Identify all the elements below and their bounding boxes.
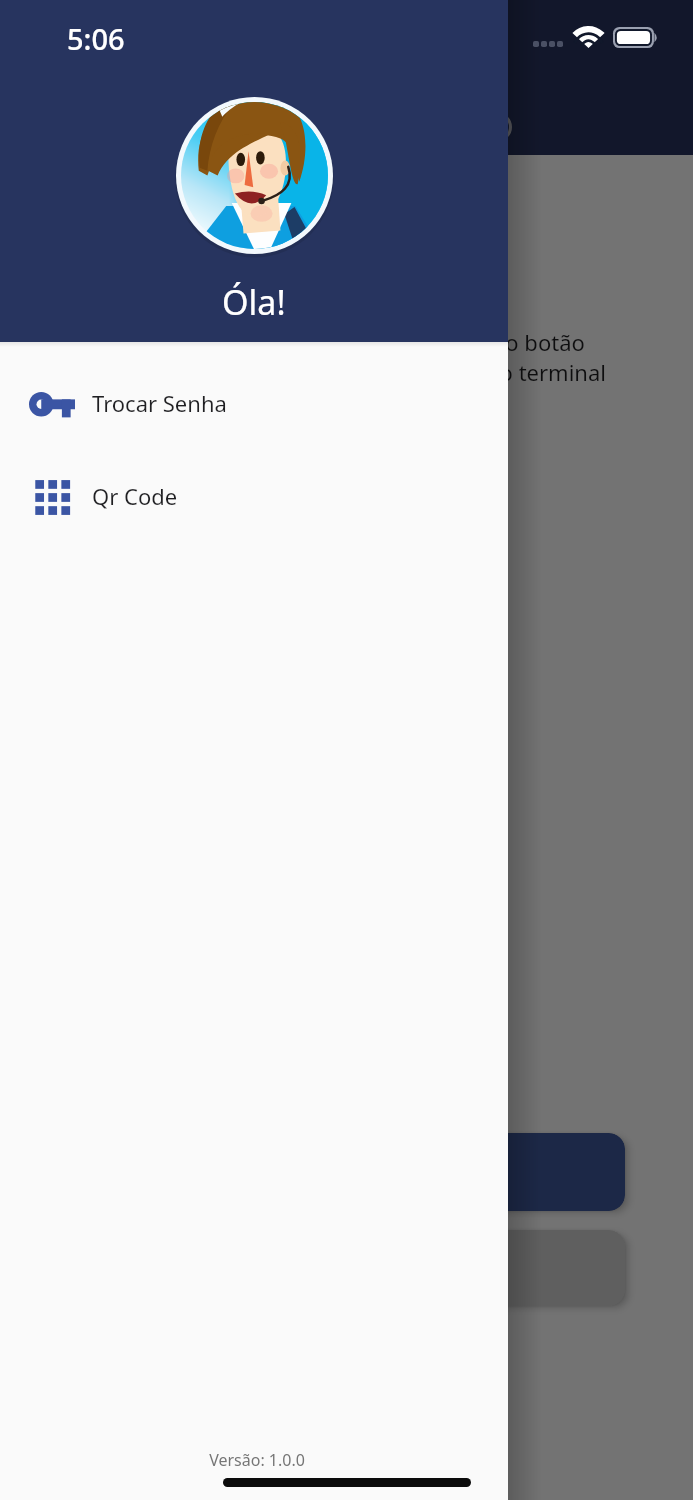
staticText: Qr Code	[92, 481, 178, 511]
staticText: Óla!	[222, 279, 286, 325]
button[interactable]	[68, 1133, 625, 1211]
button[interactable]	[0, 0, 693, 1500]
staticText: Pressione o botão	[399, 327, 585, 357]
button[interactable]: Qr Code	[0, 472, 508, 522]
button[interactable]	[68, 1230, 625, 1306]
staticText: Versão: 1.0.0	[209, 1449, 305, 1471]
button[interactable]: Trocar Senha	[0, 379, 508, 429]
staticText: 5:06	[67, 19, 125, 58]
staticText: e aproxime o terminal	[378, 357, 606, 387]
staticText: Trocar Senha	[92, 388, 227, 418]
